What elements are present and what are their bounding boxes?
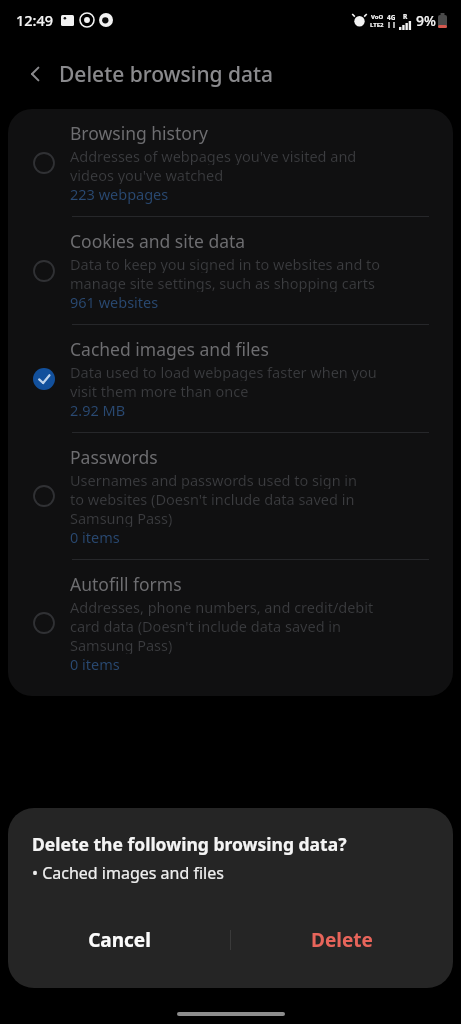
staticText: • Cached images and files xyxy=(32,862,224,884)
button[interactable]: Autofill forms xyxy=(8,560,453,686)
staticText: 2.92 MB xyxy=(70,400,126,420)
staticText: Cached images and files xyxy=(70,337,269,361)
button[interactable]: Browsing history xyxy=(8,109,453,216)
staticText: Delete the following browsing data? xyxy=(32,832,347,856)
staticText: Passwords xyxy=(70,445,158,469)
staticText: manage site settings, such as shopping c… xyxy=(70,273,375,292)
staticText: 12:49 xyxy=(16,10,54,30)
staticText: Delete browsing data xyxy=(59,60,274,89)
button[interactable]: Cancel xyxy=(8,914,230,966)
button[interactable]: Cached images and files xyxy=(8,325,453,432)
button[interactable]: Cookies and site data xyxy=(8,217,453,324)
staticText: Cookies and site data xyxy=(70,229,246,253)
staticText: Autofill forms xyxy=(70,572,182,596)
staticText: 961 websites xyxy=(70,292,159,312)
staticText: 0 items xyxy=(70,654,120,674)
staticText: 0 items xyxy=(70,527,120,547)
staticText: visit them more than once xyxy=(70,381,249,400)
staticText: 4G xyxy=(387,13,396,22)
staticText: Data used to load webpages faster when y… xyxy=(70,362,377,381)
button[interactable]: Passwords xyxy=(8,433,453,559)
staticText: Data to keep you signed in to websites a… xyxy=(70,254,381,273)
staticText: R xyxy=(403,12,408,21)
staticText: videos you've watched xyxy=(70,165,224,184)
staticText: Usernames and passwords used to sign in xyxy=(70,470,358,489)
staticText: card data (Doesn't include data saved in xyxy=(70,616,342,635)
staticText: Samsung Pass) xyxy=(70,508,173,527)
staticText: Samsung Pass) xyxy=(70,635,173,654)
staticText: Delete xyxy=(311,927,373,953)
button[interactable]: Delete xyxy=(231,914,453,966)
staticText: 9% xyxy=(416,11,436,30)
staticText: LTE2 xyxy=(370,21,384,29)
button[interactable]: Back xyxy=(18,56,54,92)
staticText: Addresses of webpages you've visited and xyxy=(70,146,357,165)
staticText: Browsing history xyxy=(70,121,209,145)
staticText: VoO xyxy=(371,13,384,21)
staticText: 223 webpages xyxy=(70,184,169,204)
staticText: Cancel xyxy=(88,927,151,953)
staticText: to websites (Doesn't include data saved … xyxy=(70,489,355,508)
staticText: Addresses, phone numbers, and credit/deb… xyxy=(70,597,374,616)
